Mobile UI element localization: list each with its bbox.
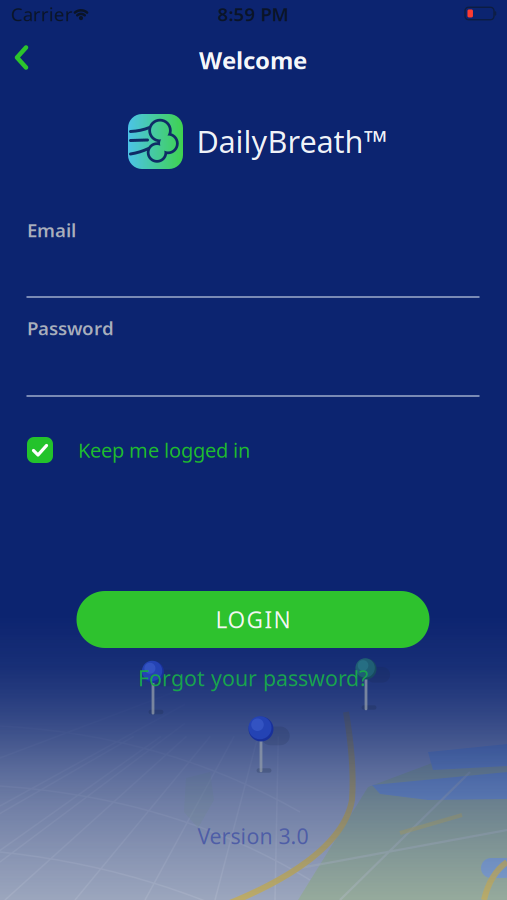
staticText: Password <box>27 316 114 340</box>
button[interactable]: Keep me logged in <box>27 437 480 463</box>
staticText: Keep me logged in <box>78 437 250 463</box>
button[interactable]: LOGIN <box>76 591 429 648</box>
staticText: Forgot your password? <box>138 664 368 692</box>
staticText: LOGIN <box>215 604 290 634</box>
staticText: DailyBreath™ <box>196 121 387 161</box>
button[interactable]: Forgot your password? <box>138 664 368 692</box>
staticText: Email <box>27 218 76 242</box>
staticText: 8:59 PM <box>217 2 288 26</box>
staticText: Carrier <box>11 2 73 26</box>
staticText: Welcome <box>199 44 307 76</box>
button[interactable]: Back <box>4 36 48 80</box>
staticText: Version 3.0 <box>197 822 308 850</box>
